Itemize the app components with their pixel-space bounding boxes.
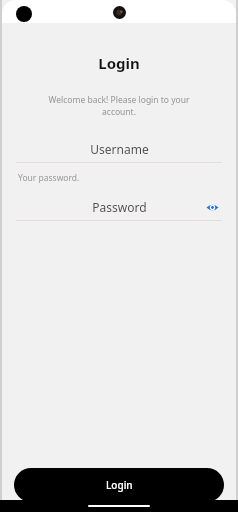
- staticText: Welcome back! Please login to your accou…: [32, 94, 206, 118]
- staticText: Your password.: [18, 172, 80, 184]
- staticText: Login: [98, 53, 140, 73]
- staticText: Login: [106, 478, 133, 492]
- staticText: Username: [90, 141, 149, 157]
- button[interactable]: Password: [16, 193, 222, 220]
- button[interactable]: Show password: [202, 197, 222, 217]
- staticText: Password: [92, 199, 147, 215]
- button[interactable]: Login: [14, 468, 224, 502]
- button[interactable]: Username: [16, 135, 222, 162]
